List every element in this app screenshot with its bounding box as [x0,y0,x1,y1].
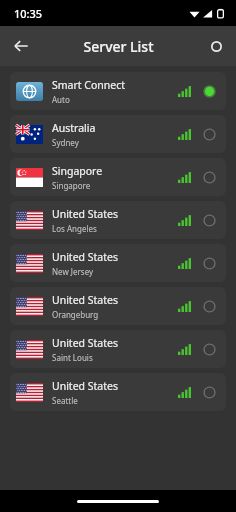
staticText: Sydney [52,137,79,148]
staticText: United States [52,379,118,393]
staticText: United States [52,336,118,350]
button[interactable]: United States [10,287,226,325]
staticText: Smart Connect [52,78,126,92]
staticText: United States [52,207,118,221]
button[interactable]: Back [6,31,36,61]
staticText: Seattle [52,395,78,406]
staticText: Singapore [52,180,91,191]
staticText: Orangeburg [52,309,99,320]
staticText: Saint Louis [52,352,93,363]
button[interactable]: United States [10,330,226,368]
button[interactable]: Australia [10,115,226,153]
staticText: United States [52,250,118,264]
staticText: Server List [83,37,154,56]
button[interactable]: Smart Connect [10,72,226,110]
staticText: New Jersey [52,266,94,277]
staticText: Australia [52,121,96,135]
staticText: United States [52,293,118,307]
staticText: 10:35 [14,6,43,21]
button[interactable]: Refresh [202,32,230,60]
button[interactable]: United States [10,373,226,411]
staticText: Singapore [52,164,103,178]
button[interactable]: United States [10,244,226,282]
staticText: Auto [52,94,70,105]
button[interactable]: United States [10,201,226,239]
staticText: Los Angeles [52,223,97,234]
button[interactable]: Singapore [10,158,226,196]
